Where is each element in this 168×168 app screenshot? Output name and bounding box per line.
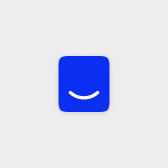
button[interactable]: App icon [58,56,109,112]
